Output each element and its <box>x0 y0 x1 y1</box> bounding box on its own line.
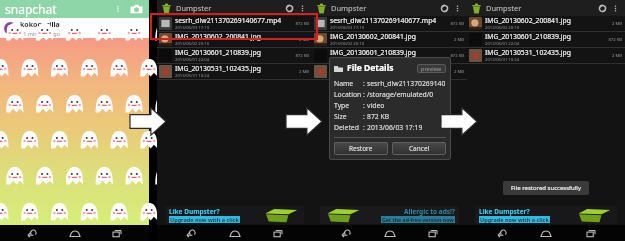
staticText: File Details <box>347 62 394 74</box>
staticText: : <box>363 90 365 99</box>
staticText: sesrh_dlw211370269140677.mp4 <box>175 16 282 25</box>
staticText: 872 KB <box>450 21 464 27</box>
staticText: Location <box>334 90 362 99</box>
staticText: : <box>363 123 365 132</box>
staticText: IMG_20130602_200841.jpg <box>330 32 416 41</box>
staticText: 2013/06/02 20:10 <box>175 41 210 47</box>
staticText: 2013/06/03 17:19 <box>175 25 210 31</box>
staticText: IMG_20130601_210839.jpg <box>175 48 261 57</box>
button[interactable]: sesrh_dlw211370269140677.mp4 <box>312 16 467 32</box>
button[interactable]: IMG_20130531_102435.jpg <box>312 64 467 80</box>
staticText: IMG_20130531_102435.jpg <box>485 48 571 57</box>
staticText: 2013/06/02 20:10 <box>485 25 520 31</box>
staticText: Dumpster <box>331 3 367 13</box>
staticText: Like Dumpster? <box>169 207 220 216</box>
staticText: IMG_20130602_200841.jpg <box>485 16 571 25</box>
button[interactable]: Like Dumpster? <box>475 206 617 224</box>
staticText: preview <box>421 65 442 72</box>
button[interactable]: preview <box>421 65 442 72</box>
staticText: : <box>363 112 365 121</box>
staticText: 2013/06/03 17:19 <box>330 25 365 31</box>
button[interactable]: Back <box>336 225 356 241</box>
staticText: Like Dumpster? <box>479 207 530 216</box>
button[interactable]: Home <box>380 225 400 241</box>
staticText: /storage/emulated/0 <box>367 90 434 99</box>
staticText: Get the ad-free version now <box>382 216 454 223</box>
button[interactable]: Home <box>536 225 556 241</box>
staticText: : <box>363 79 365 88</box>
button[interactable]: Back <box>181 225 201 241</box>
button[interactable]: sesrh_dlw211370269140677.mp4 <box>157 16 312 32</box>
button[interactable]: Restore <box>334 142 388 155</box>
button[interactable]: More options <box>451 2 463 14</box>
button[interactable]: Refresh <box>283 2 296 15</box>
staticText: IMG_20130601_210839.jpg <box>485 32 571 41</box>
staticText: 872 KB <box>295 53 309 59</box>
staticText: 2 MB <box>298 37 309 43</box>
button[interactable]: IMG_20130531_102435.jpg <box>467 48 625 64</box>
staticText: kokogorilla <box>20 20 60 30</box>
button[interactable]: Refresh <box>438 2 451 15</box>
button[interactable]: Cancel <box>392 142 446 155</box>
staticText: 872 KB <box>608 37 622 43</box>
staticText: 2 MB <box>453 37 464 43</box>
button[interactable]: IMG_20130601_210839.jpg <box>467 32 625 48</box>
staticText: 2013/06/02 20:10 <box>330 41 365 47</box>
button[interactable]: Recent apps <box>423 225 443 241</box>
staticText: 2 MB <box>611 21 622 27</box>
staticText: 872 KB <box>367 112 390 121</box>
staticText: 2013/05/31 10:24 <box>175 73 210 79</box>
staticText: 2013/06/03 17:19 <box>367 123 423 132</box>
button[interactable]: More options <box>296 2 308 14</box>
button[interactable]: Home <box>65 225 85 241</box>
staticText: 41 minutes ago <box>20 30 61 37</box>
button[interactable]: IMG_20130531_102435.jpg <box>157 64 312 80</box>
staticText: sesrh_dlw211370269140677.mp4 <box>330 16 437 25</box>
staticText: IMG_20130531_102435.jpg <box>330 64 416 73</box>
staticText: Size <box>334 112 347 121</box>
button[interactable]: Allergic to ads!? <box>320 206 459 224</box>
staticText: 2 MB <box>611 53 622 59</box>
staticText: 2013/06/01 22:04 <box>485 41 520 47</box>
staticText: IMG_20130601_210839.jpg <box>330 48 416 57</box>
button[interactable]: More options <box>609 2 621 14</box>
button[interactable]: Like Dumpster? <box>165 206 304 224</box>
button[interactable]: IMG_20130602_200841.jpg <box>312 32 467 48</box>
staticText: Name <box>334 79 354 88</box>
staticText: Restore <box>349 144 373 153</box>
staticText: Type <box>334 101 350 110</box>
button[interactable]: Refresh <box>596 2 609 15</box>
staticText: 2013/06/01 22:04 <box>330 57 365 63</box>
staticText: Dumpster <box>176 3 212 13</box>
staticText: sesrh_dlw211370269140 <box>367 79 446 88</box>
button[interactable]: IMG_20130601_210839.jpg <box>312 48 467 64</box>
button[interactable]: Back <box>492 225 512 241</box>
staticText: 2 MB <box>298 69 309 75</box>
button[interactable]: Camera <box>128 1 144 17</box>
button[interactable]: Recent apps <box>581 225 601 241</box>
staticText: 2013/06/01 22:04 <box>175 57 210 63</box>
button[interactable]: More options <box>111 2 125 16</box>
button[interactable]: Back <box>22 225 42 241</box>
staticText: video <box>367 101 385 110</box>
button[interactable]: Recent apps <box>268 225 288 241</box>
button[interactable]: Home <box>225 225 245 241</box>
staticText: Cancel <box>409 144 430 153</box>
staticText: Upgrade now with a click <box>480 216 549 223</box>
staticText: 2013/05/31 10:24 <box>485 57 520 63</box>
staticText: : <box>363 101 365 110</box>
staticText: 872 KB <box>450 53 464 59</box>
button[interactable]: kokogorilla <box>4 18 149 38</box>
staticText: IMG_20130531_102435.jpg <box>175 64 261 73</box>
staticText: File restored successfully <box>511 184 581 192</box>
staticText: Upgrade now with a click <box>170 216 239 223</box>
button[interactable]: IMG_20130601_210839.jpg <box>157 48 312 64</box>
button[interactable]: Recent apps <box>107 225 127 241</box>
button[interactable]: IMG_20130602_200841.jpg <box>157 32 312 48</box>
staticText: IMG_20130602_200841.jpg <box>175 32 261 41</box>
staticText: 872 KB <box>295 21 309 27</box>
staticText: Allergic to ads!? <box>404 207 455 216</box>
staticText: Dumpster <box>486 3 522 13</box>
button[interactable]: IMG_20130602_200841.jpg <box>467 16 625 32</box>
